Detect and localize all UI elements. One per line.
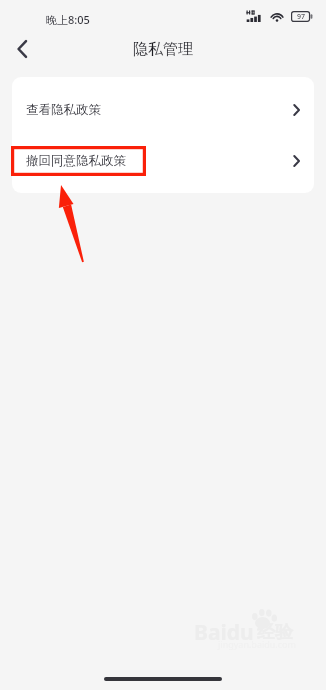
staticText: 隐私管理 xyxy=(133,40,193,59)
button[interactable]: 返回 xyxy=(0,34,44,64)
staticText: 经验 xyxy=(257,621,293,644)
staticText: 97 xyxy=(297,12,306,22)
staticText: Baidu xyxy=(194,618,254,647)
staticText: 撤回同意隐私政策 xyxy=(26,153,126,169)
staticText: 晚上8:05 xyxy=(46,12,90,27)
staticText: 查看隐私政策 xyxy=(26,102,101,118)
button[interactable]: 撤回同意隐私政策 xyxy=(12,135,314,186)
button[interactable]: 查看隐私政策 xyxy=(12,84,314,135)
